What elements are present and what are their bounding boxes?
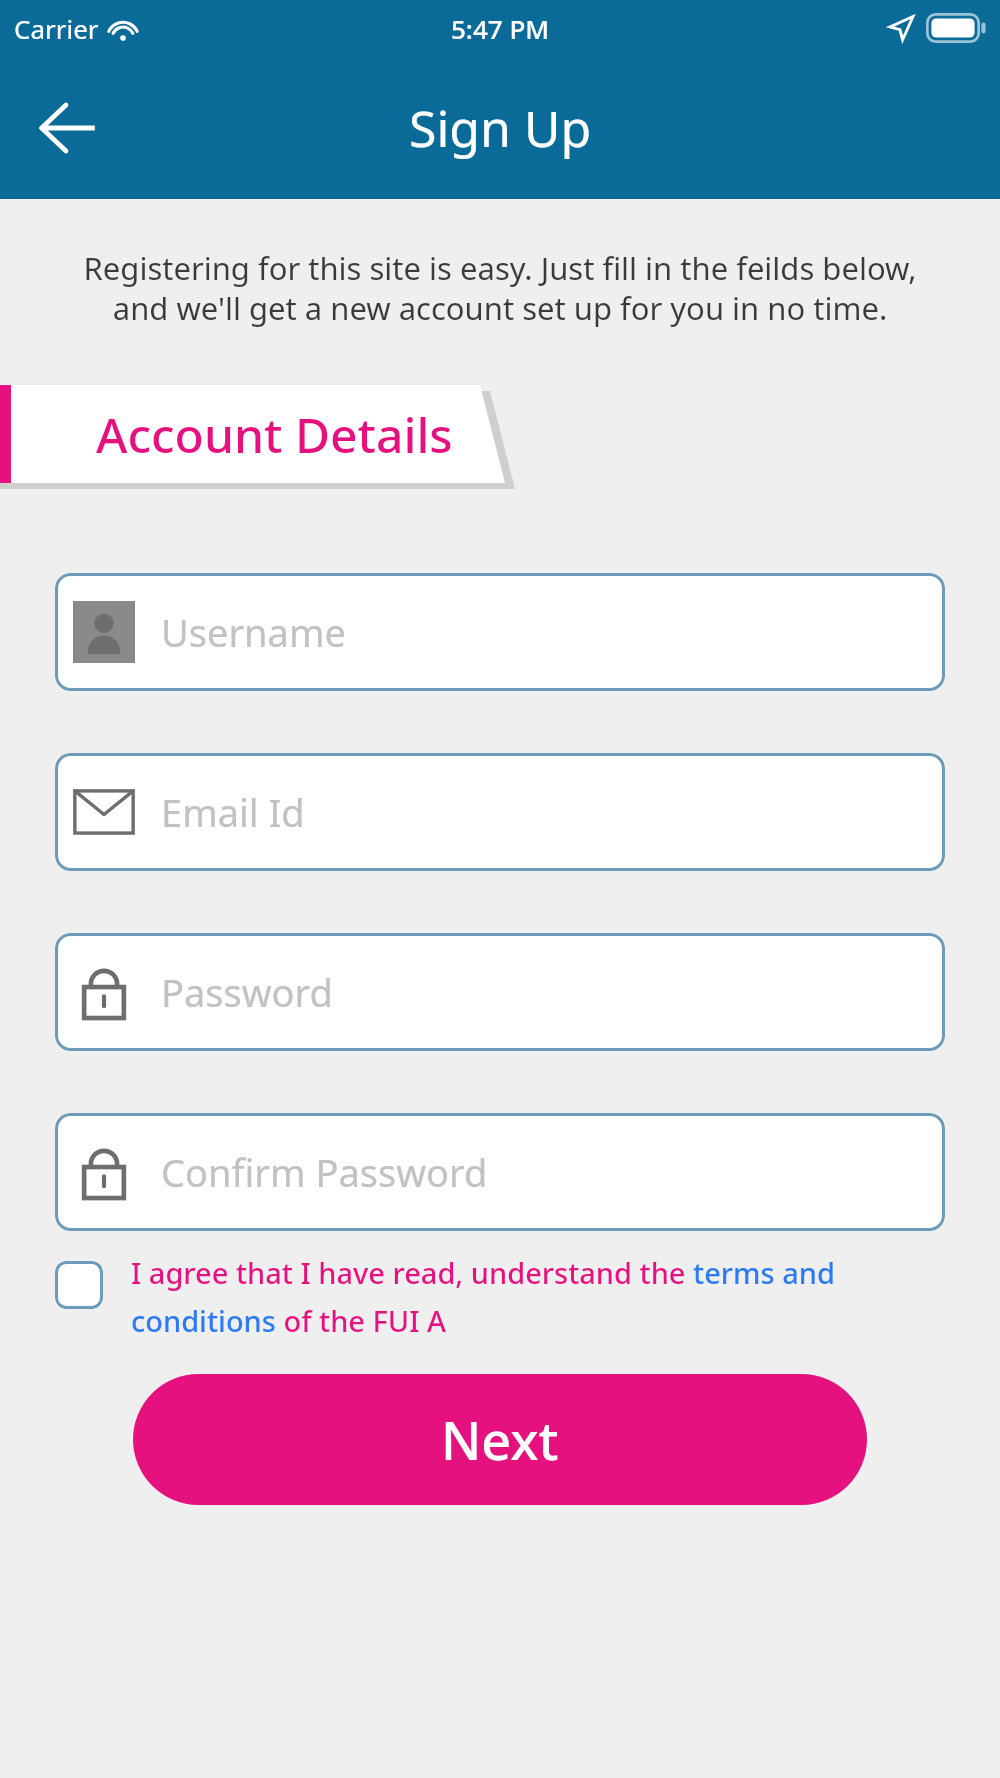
- staticText: Registering for this site is easy. Just …: [76, 247, 924, 329]
- staticText: Email Id: [161, 786, 305, 838]
- staticText: Sign Up: [409, 94, 592, 162]
- staticText: 5:47 PM: [451, 11, 550, 46]
- button[interactable]: Password: [55, 933, 945, 1051]
- button[interactable]: Email Id: [55, 753, 945, 871]
- staticText: I agree that I have read, understand the…: [131, 1253, 960, 1340]
- staticText: Password: [161, 966, 333, 1018]
- button[interactable]: Next: [133, 1374, 867, 1505]
- staticText: Confirm Password: [161, 1146, 488, 1198]
- button[interactable]: Confirm Password: [55, 1113, 945, 1231]
- button[interactable]: Username: [55, 573, 945, 691]
- staticText: Username: [161, 606, 346, 658]
- button[interactable]: I agree that I have read, understand the…: [55, 1253, 960, 1340]
- staticText: Carrier: [14, 11, 99, 46]
- button[interactable]: Back: [24, 86, 108, 170]
- staticText: Next: [441, 1404, 559, 1475]
- button[interactable]: Account Details: [0, 385, 1000, 483]
- staticText: Account Details: [96, 402, 453, 467]
